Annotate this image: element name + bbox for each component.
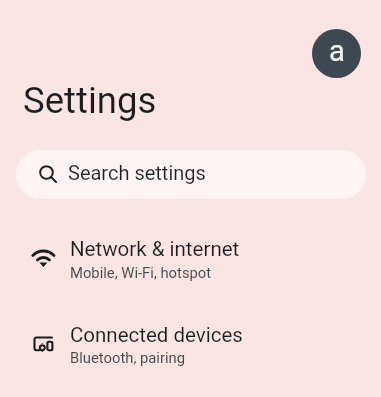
staticText: Connected devices [70, 323, 243, 347]
staticText: a [329, 34, 345, 68]
button[interactable]: Connected devices [0, 308, 381, 394]
button[interactable]: a [312, 29, 361, 78]
button[interactable]: Network & internet [0, 222, 381, 308]
staticText: Search settings [68, 161, 206, 184]
staticText: Network & internet [70, 237, 240, 261]
staticText: Mobile, Wi-Fi, hotspot [70, 264, 212, 281]
staticText: Settings [23, 79, 157, 122]
staticText: Bluetooth, pairing [70, 349, 186, 366]
button[interactable]: Search settings [16, 150, 366, 199]
